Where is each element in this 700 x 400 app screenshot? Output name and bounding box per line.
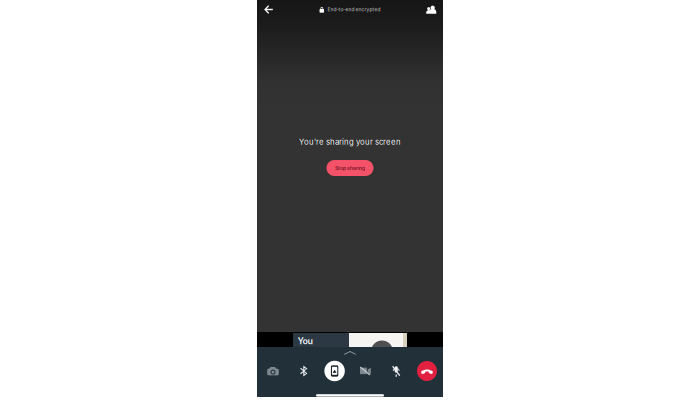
button[interactable]: Back bbox=[257, 0, 279, 18]
button[interactable]: Turn camera on bbox=[352, 360, 378, 382]
staticText: You bbox=[298, 336, 313, 346]
button[interactable]: Stop screen sharing bbox=[322, 360, 348, 382]
button[interactable]: Audio output bbox=[291, 360, 317, 382]
button[interactable]: Stop sharing bbox=[326, 160, 373, 176]
button[interactable]: Add participant bbox=[420, 0, 442, 18]
button[interactable]: Unmute microphone bbox=[383, 360, 409, 382]
staticText: End-to-end encrypted bbox=[327, 6, 380, 12]
button[interactable]: Switch camera bbox=[260, 360, 286, 382]
staticText: You're sharing your screen bbox=[299, 137, 401, 147]
button[interactable]: End call bbox=[414, 360, 440, 382]
staticText: Stop sharing bbox=[335, 165, 365, 171]
